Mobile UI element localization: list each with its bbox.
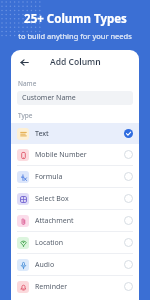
staticText: Name — [18, 79, 37, 88]
staticText: Audio — [35, 260, 55, 270]
button[interactable]: Select Box — [11, 188, 139, 209]
button[interactable]: Reminder — [11, 276, 139, 297]
staticText: Reminder — [35, 282, 68, 292]
button[interactable]: Attachment — [11, 210, 139, 231]
button[interactable]: Formula — [11, 166, 139, 187]
button[interactable]: Mobile Number — [11, 144, 139, 165]
button[interactable]: Customer Name — [17, 91, 133, 105]
staticText: Mobile Number — [35, 150, 87, 160]
staticText: Formula — [35, 172, 63, 182]
staticText: 25+ Column Types — [24, 11, 127, 27]
staticText: Select Box — [35, 194, 69, 204]
button[interactable]: Location — [11, 232, 139, 253]
staticText: Attachment — [35, 216, 74, 226]
button[interactable]: Text — [11, 123, 139, 144]
staticText: Type — [18, 111, 33, 120]
staticText: Customer Name — [22, 93, 76, 103]
button[interactable]: Audio — [11, 254, 139, 275]
staticText: Text — [35, 129, 49, 139]
button[interactable]: Back — [16, 54, 32, 70]
staticText: to build anything for your needs — [18, 31, 132, 41]
staticText: Add Column — [50, 56, 101, 68]
staticText: Location — [35, 238, 64, 248]
